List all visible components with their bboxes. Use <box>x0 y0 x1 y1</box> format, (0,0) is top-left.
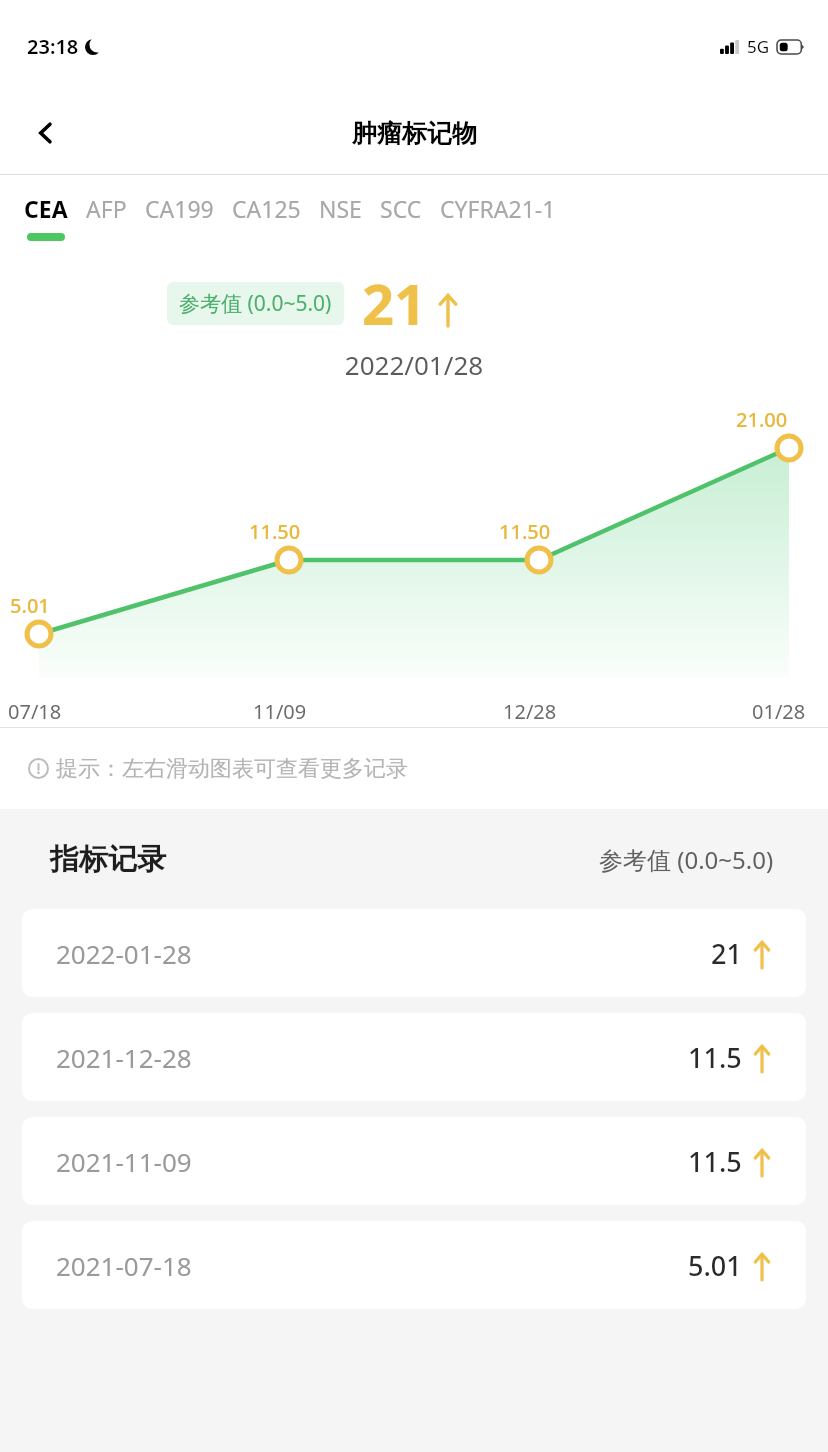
button[interactable]: 2022-01-28 <box>22 909 806 997</box>
staticText: 11.5 <box>688 1143 742 1180</box>
staticText: 23:18 <box>27 33 79 60</box>
staticText: SCC <box>380 193 422 224</box>
staticText: 2021-11-09 <box>56 1144 192 1179</box>
staticText: 参考值 (0.0~5.0) <box>179 289 332 318</box>
button[interactable]: Back <box>18 105 74 161</box>
staticText: 11.50 <box>249 518 301 545</box>
staticText: AFP <box>86 193 127 224</box>
button[interactable]: AFP <box>86 175 127 233</box>
staticText: 提示：左右滑动图表可查看更多记录 <box>56 755 408 783</box>
staticText: 5.01 <box>688 1247 742 1284</box>
staticText: CA125 <box>232 193 301 224</box>
staticText: 11/09 <box>253 698 307 725</box>
staticText: 指标记录 <box>50 841 166 878</box>
button[interactable]: 2021-11-09 <box>22 1117 806 1205</box>
staticText: 11.50 <box>499 518 551 545</box>
staticText: 5.01 <box>10 592 50 619</box>
staticText: 21 <box>711 935 742 972</box>
button[interactable]: CYFRA21-1 <box>440 175 556 233</box>
staticText: 21 <box>362 265 427 341</box>
staticText: 2021-07-18 <box>56 1248 192 1283</box>
staticText: CYFRA21-1 <box>440 193 556 224</box>
button[interactable]: CA125 <box>232 175 301 233</box>
staticText: 21.00 <box>736 406 788 433</box>
button[interactable]: CA199 <box>145 175 214 233</box>
staticText: 5G <box>747 35 770 58</box>
staticText: 01/28 <box>752 698 806 725</box>
staticText: 2022/01/28 <box>0 347 828 382</box>
staticText: CEA <box>24 193 68 224</box>
staticText: 参考值 (0.0~5.0) <box>599 843 774 876</box>
staticText: 11.5 <box>688 1039 742 1076</box>
button[interactable]: NSE <box>319 175 362 233</box>
button[interactable]: CEA <box>24 175 68 241</box>
staticText: 肿瘤标记物 <box>352 118 477 149</box>
staticText: 2021-12-28 <box>56 1040 192 1075</box>
staticText: 07/18 <box>8 698 62 725</box>
staticText: CA199 <box>145 193 214 224</box>
button[interactable]: 2021-07-18 <box>22 1221 806 1309</box>
button[interactable]: 2021-12-28 <box>22 1013 806 1101</box>
staticText: 2022-01-28 <box>56 936 192 971</box>
staticText: NSE <box>319 193 362 224</box>
button[interactable]: SCC <box>380 175 422 233</box>
staticText: 12/28 <box>503 698 557 725</box>
